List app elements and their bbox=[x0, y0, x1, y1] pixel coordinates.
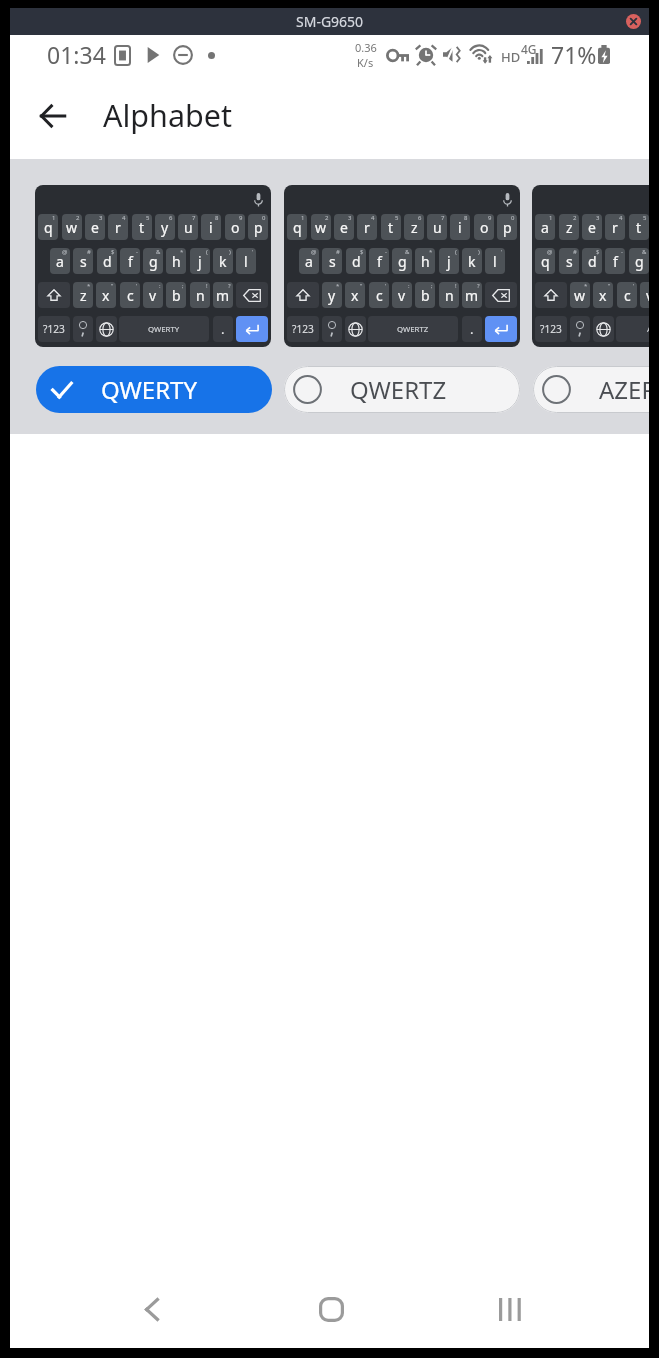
button[interactable]: s bbox=[322, 248, 342, 274]
button[interactable]: QWERTY bbox=[119, 316, 209, 342]
button[interactable]: r bbox=[357, 214, 377, 240]
button[interactable]: h bbox=[166, 248, 186, 274]
button[interactable]: x bbox=[345, 282, 365, 308]
button[interactable]: u bbox=[427, 214, 447, 240]
button[interactable]: Change language bbox=[593, 316, 614, 342]
button[interactable]: q bbox=[535, 248, 555, 274]
button[interactable]: v bbox=[392, 282, 412, 308]
button[interactable]: t bbox=[629, 214, 649, 240]
button[interactable]: s bbox=[559, 248, 579, 274]
button[interactable]: q bbox=[287, 214, 307, 240]
button[interactable]: Backspace bbox=[485, 282, 517, 308]
button[interactable]: e bbox=[85, 214, 105, 240]
button[interactable]: x bbox=[96, 282, 116, 308]
button[interactable]: u bbox=[178, 214, 198, 240]
button[interactable]: b bbox=[166, 282, 186, 308]
button[interactable]: d bbox=[97, 248, 117, 274]
staticText: l bbox=[244, 252, 248, 271]
button[interactable]: v bbox=[640, 282, 649, 308]
button[interactable]: l bbox=[236, 248, 256, 274]
button[interactable]: j bbox=[439, 248, 459, 274]
button[interactable]: i bbox=[201, 214, 221, 240]
button[interactable]: r bbox=[605, 214, 625, 240]
button[interactable]: v bbox=[143, 282, 163, 308]
button[interactable]: g bbox=[629, 248, 649, 274]
button[interactable]: QWERTZ bbox=[284, 366, 520, 413]
button[interactable]: d bbox=[582, 248, 602, 274]
button[interactable]: z bbox=[73, 282, 93, 308]
button[interactable]: a bbox=[299, 248, 319, 274]
button[interactable]: a bbox=[532, 185, 649, 347]
button[interactable]: p bbox=[248, 214, 268, 240]
button[interactable]: m bbox=[462, 282, 482, 308]
button[interactable]: Enter bbox=[236, 316, 268, 342]
button[interactable]: c bbox=[120, 282, 140, 308]
button[interactable]: AZERTY bbox=[616, 316, 649, 342]
button[interactable]: f bbox=[120, 248, 140, 274]
button[interactable]: Home bbox=[307, 1285, 355, 1333]
button[interactable]: QWERTZ bbox=[368, 316, 458, 342]
button[interactable]: l bbox=[485, 248, 505, 274]
button[interactable]: . bbox=[213, 316, 233, 342]
button[interactable]: y bbox=[155, 214, 175, 240]
button[interactable]: Enter bbox=[485, 316, 517, 342]
button[interactable]: g bbox=[392, 248, 412, 274]
button[interactable]: p bbox=[497, 214, 517, 240]
button[interactable]: w bbox=[570, 282, 590, 308]
button[interactable]: t bbox=[381, 214, 401, 240]
button[interactable]: k bbox=[213, 248, 233, 274]
button[interactable]: j bbox=[190, 248, 210, 274]
button[interactable]: q bbox=[284, 185, 520, 347]
button[interactable]: c bbox=[369, 282, 389, 308]
button[interactable]: e bbox=[334, 214, 354, 240]
button[interactable]: Navigate up bbox=[29, 92, 77, 140]
button[interactable]: b bbox=[415, 282, 435, 308]
button[interactable]: q bbox=[35, 185, 271, 347]
button[interactable]: i bbox=[450, 214, 470, 240]
button[interactable]: h bbox=[415, 248, 435, 274]
button[interactable]: t bbox=[132, 214, 152, 240]
button[interactable]: Close emulator bbox=[626, 14, 641, 29]
button[interactable]: c bbox=[617, 282, 637, 308]
button[interactable]: ?123 bbox=[287, 316, 319, 342]
button[interactable]: Shift bbox=[38, 282, 70, 308]
button[interactable]: g bbox=[143, 248, 163, 274]
button[interactable]: Recent apps bbox=[486, 1285, 534, 1333]
button[interactable]: w bbox=[311, 214, 331, 240]
button[interactable]: o bbox=[225, 214, 245, 240]
button[interactable]: ?123 bbox=[38, 316, 70, 342]
button[interactable]: e bbox=[582, 214, 602, 240]
button[interactable]: z bbox=[559, 214, 579, 240]
button[interactable]: x bbox=[593, 282, 613, 308]
button[interactable]: n bbox=[439, 282, 459, 308]
button[interactable]: Emoji bbox=[73, 316, 93, 342]
button[interactable]: f bbox=[369, 248, 389, 274]
button[interactable]: Change language bbox=[345, 316, 366, 342]
button[interactable]: z bbox=[404, 214, 424, 240]
button[interactable]: AZERTY bbox=[533, 366, 649, 413]
button[interactable]: s bbox=[73, 248, 93, 274]
button[interactable]: n bbox=[190, 282, 210, 308]
button[interactable]: m bbox=[213, 282, 233, 308]
button[interactable]: f bbox=[605, 248, 625, 274]
button[interactable]: r bbox=[108, 214, 128, 240]
button[interactable]: a bbox=[535, 214, 555, 240]
button[interactable]: Shift bbox=[535, 282, 567, 308]
button[interactable]: o bbox=[474, 214, 494, 240]
button[interactable]: Emoji bbox=[570, 316, 590, 342]
button[interactable]: Emoji bbox=[322, 316, 342, 342]
button[interactable]: w bbox=[62, 214, 82, 240]
button[interactable]: Back bbox=[128, 1285, 176, 1333]
staticText: 3 bbox=[348, 214, 352, 222]
button[interactable]: ?123 bbox=[535, 316, 567, 342]
button[interactable]: k bbox=[462, 248, 482, 274]
button[interactable]: a bbox=[50, 248, 70, 274]
button[interactable]: q bbox=[38, 214, 58, 240]
button[interactable]: Shift bbox=[287, 282, 319, 308]
button[interactable]: d bbox=[346, 248, 366, 274]
button[interactable]: Backspace bbox=[236, 282, 268, 308]
button[interactable]: QWERTY bbox=[36, 366, 272, 413]
button[interactable]: Change language bbox=[96, 316, 117, 342]
button[interactable]: . bbox=[462, 316, 482, 342]
button[interactable]: y bbox=[322, 282, 342, 308]
